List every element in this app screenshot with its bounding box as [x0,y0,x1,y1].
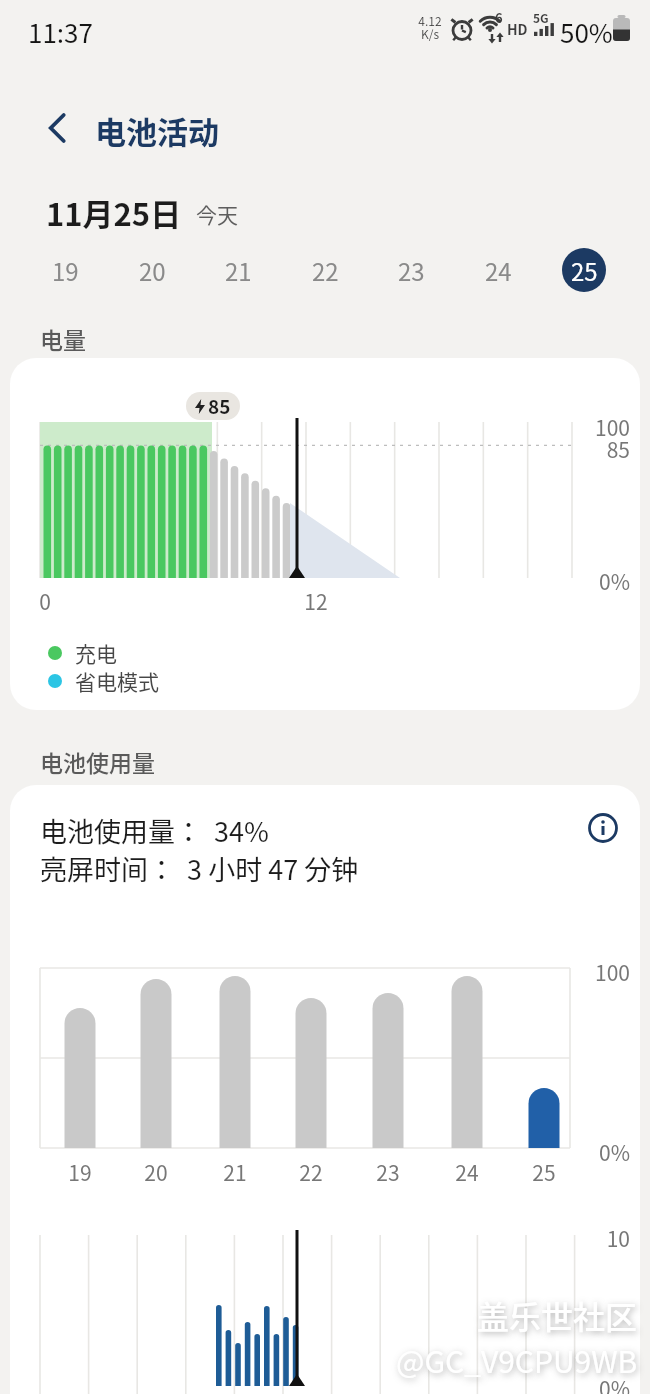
staticText: 4.12 K/s [410,12,450,43]
staticText: 23 [398,253,425,288]
staticText: 5G [533,9,549,26]
staticText: 22 [293,1157,329,1187]
staticText: 6 [495,8,503,27]
staticText: 10 [585,1223,630,1253]
staticText: 85 [590,434,630,464]
staticText: 25 [526,1157,562,1187]
button[interactable] [585,810,621,846]
button[interactable]: 23 [389,248,433,292]
staticText: 电池活动 [95,108,219,153]
staticText: 19 [52,253,79,288]
button[interactable]: 25 [562,248,606,292]
staticText: @GC_V9CPU9WB [396,1338,638,1381]
staticText: 亮屏时间： 3 小时 47 分钟 [40,849,359,888]
staticText: 100 [590,412,630,442]
staticText: 0% [585,1373,630,1394]
staticText: 24 [449,1157,485,1187]
button[interactable] [30,100,86,156]
staticText: 0% [590,566,630,596]
staticText: 0 [35,586,55,616]
staticText: 今天 [196,199,238,229]
staticText: 24 [485,253,512,288]
staticText: 11:37 [28,13,93,51]
button[interactable]: 20 [130,248,174,292]
staticText: 电池使用量 [40,745,155,778]
staticText: 25 [571,253,598,288]
staticText: 12 [303,586,329,616]
button[interactable]: 19 [43,248,87,292]
staticText: 19 [62,1157,98,1187]
staticText: 20 [139,253,166,288]
staticText: 充电 [75,638,117,668]
staticText: 盖乐世社区 [477,1292,638,1338]
staticText: 20 [138,1157,174,1187]
button[interactable]: 24 [476,248,520,292]
staticText: 电池使用量： 34% [40,811,269,850]
staticText: 50% [560,13,613,51]
button[interactable]: 21 [216,248,260,292]
button[interactable]: 22 [303,248,347,292]
staticText: HD [507,19,528,39]
staticText: 0% [585,1137,630,1167]
staticText: 22 [312,253,339,288]
staticText: 85 [208,392,231,420]
staticText: 省电模式 [75,666,159,696]
staticText: 100 [585,957,630,987]
staticText: 21 [217,1157,253,1187]
staticText: 21 [225,253,252,288]
staticText: 11月25日 [46,190,182,235]
staticText: 23 [370,1157,406,1187]
staticText: 电量 [40,322,86,355]
